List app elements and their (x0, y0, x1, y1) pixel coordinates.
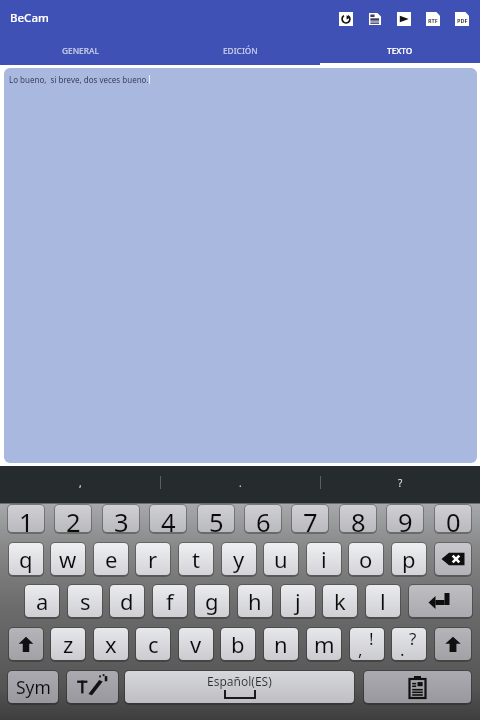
button[interactable]: Export PDF (447, 4, 476, 33)
button[interactable]: x (94, 628, 128, 660)
button[interactable]: d (110, 585, 144, 617)
staticText: x (105, 629, 117, 659)
button[interactable]: 0 (435, 505, 471, 532)
button[interactable]: Send (389, 4, 418, 33)
staticText: 0 (446, 505, 461, 532)
button[interactable]: Export RTF (418, 4, 447, 33)
button[interactable]: Reset (331, 4, 360, 33)
button[interactable]: 2 (55, 505, 91, 532)
button[interactable]: c (136, 628, 170, 660)
button[interactable]: 7 (292, 505, 328, 532)
staticText: RTF (428, 17, 438, 24)
button[interactable]: e (94, 543, 128, 575)
staticText: Sym (16, 675, 51, 699)
button[interactable]: GENERAL (0, 36, 160, 65)
staticText: 4 (161, 505, 176, 532)
button[interactable]: Shift (435, 628, 471, 660)
staticText: t (192, 544, 200, 574)
staticText: BeCam (10, 10, 49, 26)
staticText: s (80, 586, 91, 616)
button[interactable]: , (0, 466, 160, 499)
button[interactable]: ? (321, 466, 480, 499)
button[interactable]: Handwriting (67, 671, 118, 703)
button[interactable]: u (264, 543, 298, 575)
button[interactable]: t (179, 543, 213, 575)
staticText: v (190, 629, 202, 659)
staticText: 9 (398, 505, 413, 532)
button[interactable]: n (264, 628, 298, 660)
staticText: n (274, 629, 288, 659)
button[interactable]: w (51, 543, 85, 575)
staticText: 6 (256, 505, 271, 532)
staticText: i (321, 544, 327, 574)
button[interactable]: v (179, 628, 213, 660)
button[interactable]: Shift (9, 628, 43, 660)
staticText: . (239, 476, 242, 490)
button[interactable]: i (307, 543, 341, 575)
button[interactable]: Comma exclamation (350, 628, 384, 660)
button[interactable]: 3 (103, 505, 139, 532)
staticText: , (79, 476, 82, 490)
staticText: GENERAL (62, 45, 99, 56)
staticText: z (63, 629, 74, 659)
button[interactable]: 5 (198, 505, 234, 532)
staticText: ! (369, 628, 374, 650)
button[interactable]: j (281, 585, 315, 617)
staticText: g (205, 586, 219, 616)
button[interactable]: y (222, 543, 256, 575)
button[interactable]: Save (360, 4, 389, 33)
staticText: l (380, 586, 386, 616)
staticText: c (148, 629, 159, 659)
staticText: ? (398, 476, 403, 490)
button[interactable]: m (307, 628, 341, 660)
staticText: 1 (19, 505, 34, 532)
button[interactable]: Backspace (435, 543, 471, 575)
button[interactable]: Clipboard (364, 671, 471, 703)
staticText: . (400, 638, 405, 660)
button[interactable]: 1 (8, 505, 44, 532)
button[interactable]: Enter (409, 585, 472, 617)
staticText: Lo bueno, si breve, dos veces bueno. (9, 74, 149, 85)
button[interactable]: s (68, 585, 102, 617)
button[interactable]: a (25, 585, 59, 617)
button[interactable]: 8 (340, 505, 376, 532)
staticText: 2 (66, 505, 81, 532)
staticText: 8 (351, 505, 366, 532)
button[interactable]: h (238, 585, 272, 617)
button[interactable]: f (153, 585, 187, 617)
staticText: q (19, 544, 33, 574)
button[interactable]: 9 (387, 505, 423, 532)
staticText: PDF (457, 17, 468, 24)
staticText: j (295, 586, 301, 616)
staticText: w (59, 544, 77, 574)
staticText: p (402, 544, 416, 574)
button[interactable]: r (136, 543, 170, 575)
button[interactable]: Sym (8, 671, 58, 703)
staticText: e (105, 544, 118, 574)
staticText: , (358, 638, 363, 660)
button[interactable]: 4 (150, 505, 186, 532)
staticText: 5 (209, 505, 224, 532)
staticText: EDICIÓN (223, 45, 258, 56)
button[interactable]: b (221, 628, 255, 660)
button[interactable]: EDICIÓN (160, 36, 320, 65)
staticText: u (274, 544, 288, 574)
staticText: ? (409, 628, 417, 650)
staticText: f (166, 586, 174, 616)
button[interactable]: p (392, 543, 426, 575)
button[interactable]: g (195, 585, 229, 617)
button[interactable]: q (9, 543, 43, 575)
button[interactable]: k (323, 585, 357, 617)
button[interactable]: l (366, 585, 400, 617)
button[interactable]: TEXTO (320, 36, 480, 65)
staticText: 3 (114, 505, 129, 532)
staticText: h (248, 586, 262, 616)
button[interactable]: z (51, 628, 85, 660)
button[interactable]: 6 (245, 505, 281, 532)
button[interactable]: Español(ES) (125, 671, 354, 703)
staticText: Español(ES) (207, 673, 272, 689)
button[interactable]: o (349, 543, 383, 575)
button[interactable]: Period question (392, 628, 426, 660)
staticText: TEXTO (387, 45, 413, 56)
